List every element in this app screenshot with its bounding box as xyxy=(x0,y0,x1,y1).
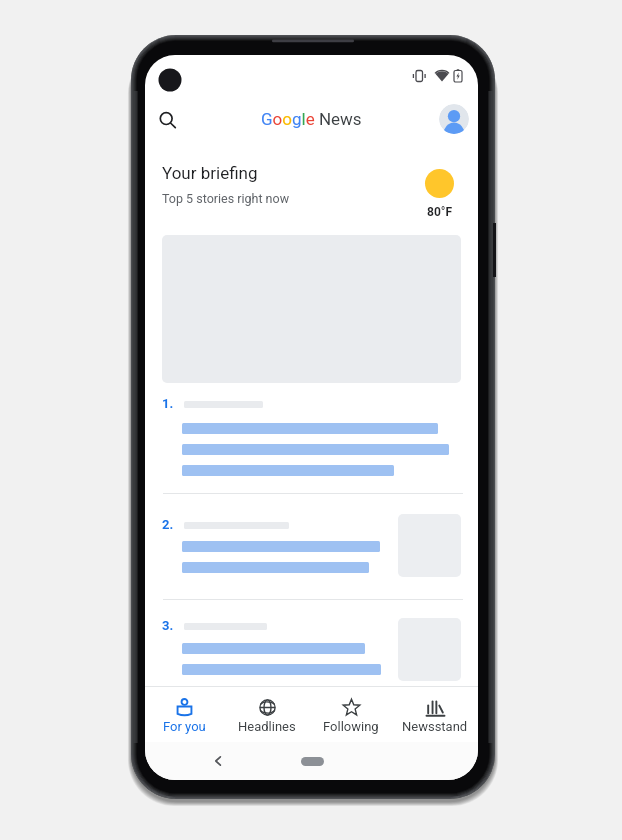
button[interactable]: Search xyxy=(153,103,185,135)
button[interactable]: Home xyxy=(301,757,324,766)
button[interactable]: For you xyxy=(145,687,225,742)
button[interactable]: 2. xyxy=(145,495,478,599)
staticText: Newsstand xyxy=(402,719,468,734)
button[interactable]: 1. xyxy=(145,394,478,493)
button[interactable]: 3. xyxy=(145,600,478,687)
button[interactable]: Back xyxy=(204,742,232,780)
button[interactable]: Following xyxy=(310,687,392,742)
button[interactable]: Headlines xyxy=(226,687,308,742)
staticText: Following xyxy=(323,719,379,734)
staticText: 1. xyxy=(162,396,174,411)
staticText: Your briefing xyxy=(162,163,258,183)
staticText: 3. xyxy=(162,618,174,633)
staticText: Headlines xyxy=(238,719,296,734)
button[interactable]: Account xyxy=(439,104,469,134)
staticText: For you xyxy=(163,719,206,734)
staticText: 80°F xyxy=(427,205,453,219)
staticText: 2. xyxy=(162,517,174,532)
button[interactable]: Newsstand xyxy=(394,687,476,742)
staticText: Google News xyxy=(261,109,362,129)
staticText: Top 5 stories right now xyxy=(162,191,290,206)
